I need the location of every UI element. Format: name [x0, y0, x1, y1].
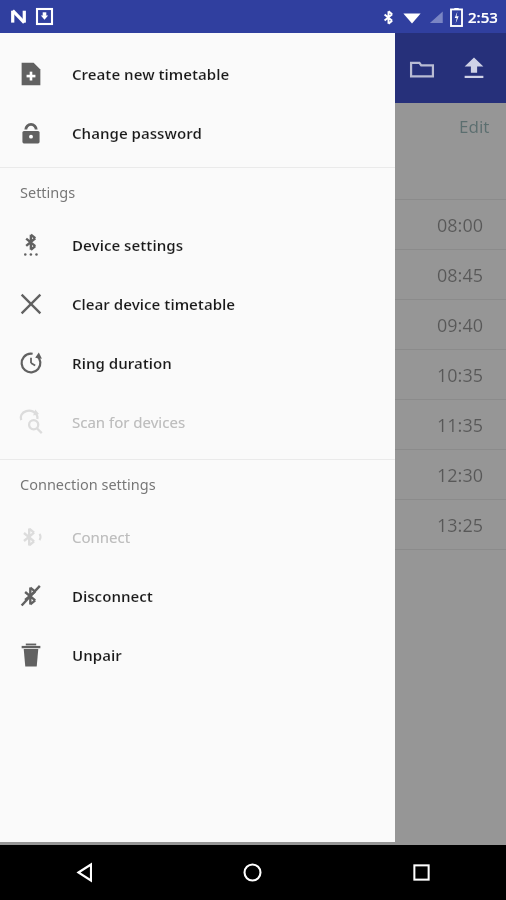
button[interactable]: 08:45	[0, 250, 506, 300]
staticText: 09:40	[437, 313, 484, 338]
staticText: Create new timetable	[72, 64, 230, 84]
button[interactable]: Upload	[448, 42, 500, 94]
staticText: Unpair	[72, 645, 122, 665]
staticText: 13:25	[437, 513, 484, 538]
staticText: 11:35	[437, 413, 484, 438]
button[interactable]: Create new timetable	[0, 44, 395, 103]
button[interactable]: 12:30	[0, 450, 506, 500]
button[interactable]: Edit	[459, 115, 490, 138]
button[interactable]: Scan for devices	[0, 392, 395, 451]
staticText: Clear device timetable	[72, 294, 236, 314]
button[interactable]: 09:40	[0, 300, 506, 350]
staticText: Mon Tue Wed Thu Fri Sat Sun	[123, 163, 383, 186]
button[interactable]: 13:25	[0, 500, 506, 550]
staticText: Disconnect	[72, 586, 153, 606]
staticText: Connect	[72, 527, 131, 547]
button[interactable]: Recent apps	[337, 845, 506, 900]
button[interactable]: Clear device timetable	[0, 274, 395, 333]
button[interactable]: 11:35	[0, 400, 506, 450]
staticText: Connection settings	[20, 474, 156, 494]
staticText: 08:45	[437, 263, 484, 288]
button[interactable]: Home	[168, 845, 337, 900]
staticText: 08:00	[437, 213, 484, 238]
button[interactable]: Unpair	[0, 625, 395, 684]
staticText: Ring duration	[72, 353, 172, 373]
staticText: Scan for devices	[72, 412, 186, 432]
button[interactable]: Open folder	[396, 42, 448, 94]
staticText: Change password	[72, 123, 202, 143]
button[interactable]: Ring duration	[0, 333, 395, 392]
button[interactable]: Connect	[0, 507, 395, 566]
button[interactable]: Change password	[0, 103, 395, 162]
staticText: 10:35	[437, 363, 484, 388]
button[interactable]: Device settings	[0, 215, 395, 274]
staticText: 12:30	[437, 463, 484, 488]
staticText: 2:53	[468, 7, 498, 27]
button[interactable]: Disconnect	[0, 566, 395, 625]
button[interactable]: Back	[0, 845, 168, 900]
staticText: Settings	[20, 182, 76, 202]
button[interactable]: 10:35	[0, 350, 506, 400]
staticText: Device settings	[72, 235, 184, 255]
button[interactable]: 08:00	[0, 200, 506, 250]
